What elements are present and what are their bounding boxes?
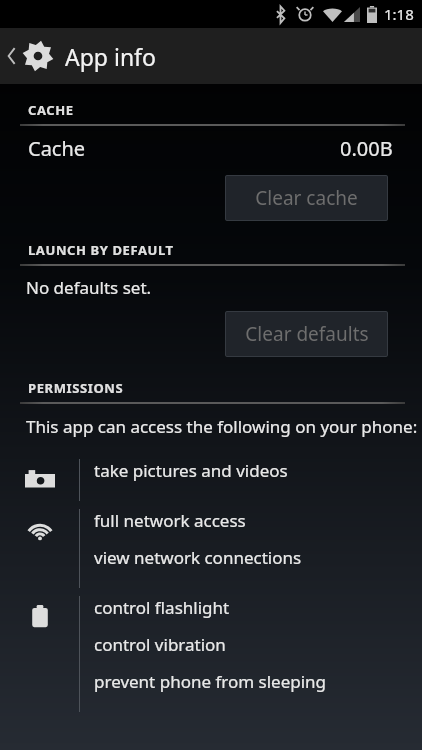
staticText: PERMISSIONS <box>28 379 124 397</box>
staticText: Clear cache <box>255 185 358 211</box>
button[interactable]: Clear defaults <box>225 311 388 357</box>
button[interactable]: Device <box>0 596 422 720</box>
staticText: view network connections <box>94 546 302 569</box>
button[interactable]: Clear cache <box>225 175 388 221</box>
staticText: CACHE <box>28 101 74 119</box>
button[interactable]: Cache <box>0 135 422 162</box>
staticText: full network access <box>94 509 246 532</box>
staticText: No defaults set. <box>26 276 152 299</box>
button[interactable]: Network <box>0 509 422 596</box>
staticText: 1:18 <box>384 4 414 24</box>
staticText: LAUNCH BY DEFAULT <box>28 241 174 259</box>
staticText: take pictures and videos <box>94 459 288 482</box>
button[interactable]: Camera <box>0 459 422 509</box>
staticText: 0.00B <box>340 135 393 162</box>
staticText: control flashlight <box>94 596 230 619</box>
staticText: App info <box>65 41 156 72</box>
staticText: prevent phone from sleeping <box>94 670 327 693</box>
staticText: Clear defaults <box>245 321 369 347</box>
staticText: This app can access the following on you… <box>26 415 418 438</box>
staticText: control vibration <box>94 633 226 656</box>
staticText: Cache <box>28 135 86 162</box>
button[interactable]: Navigate up, App info <box>0 28 422 84</box>
